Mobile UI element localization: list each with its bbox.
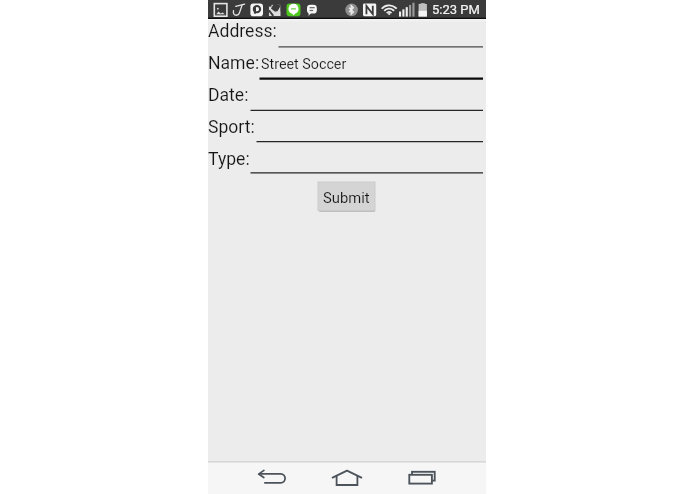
staticText: Date:: [208, 85, 249, 106]
staticText: Address:: [208, 21, 277, 42]
staticText: Street Soccer: [261, 56, 347, 73]
button[interactable]: Name field: [260, 54, 484, 79]
button[interactable]: Sport field: [257, 118, 484, 142]
button[interactable]: Recent apps: [404, 465, 442, 490]
button[interactable]: Address field: [279, 22, 484, 48]
staticText: Name:: [208, 53, 260, 74]
staticText: Type:: [208, 149, 250, 170]
button[interactable]: Home: [328, 465, 366, 490]
button[interactable]: Date field: [251, 86, 484, 111]
button[interactable]: Back: [252, 466, 292, 491]
staticText: 5:23 PM: [432, 2, 480, 17]
staticText: Sport:: [208, 117, 255, 138]
button[interactable]: Type field: [251, 150, 484, 174]
staticText: Submit: [323, 189, 370, 206]
button[interactable]: Submit: [318, 182, 375, 212]
